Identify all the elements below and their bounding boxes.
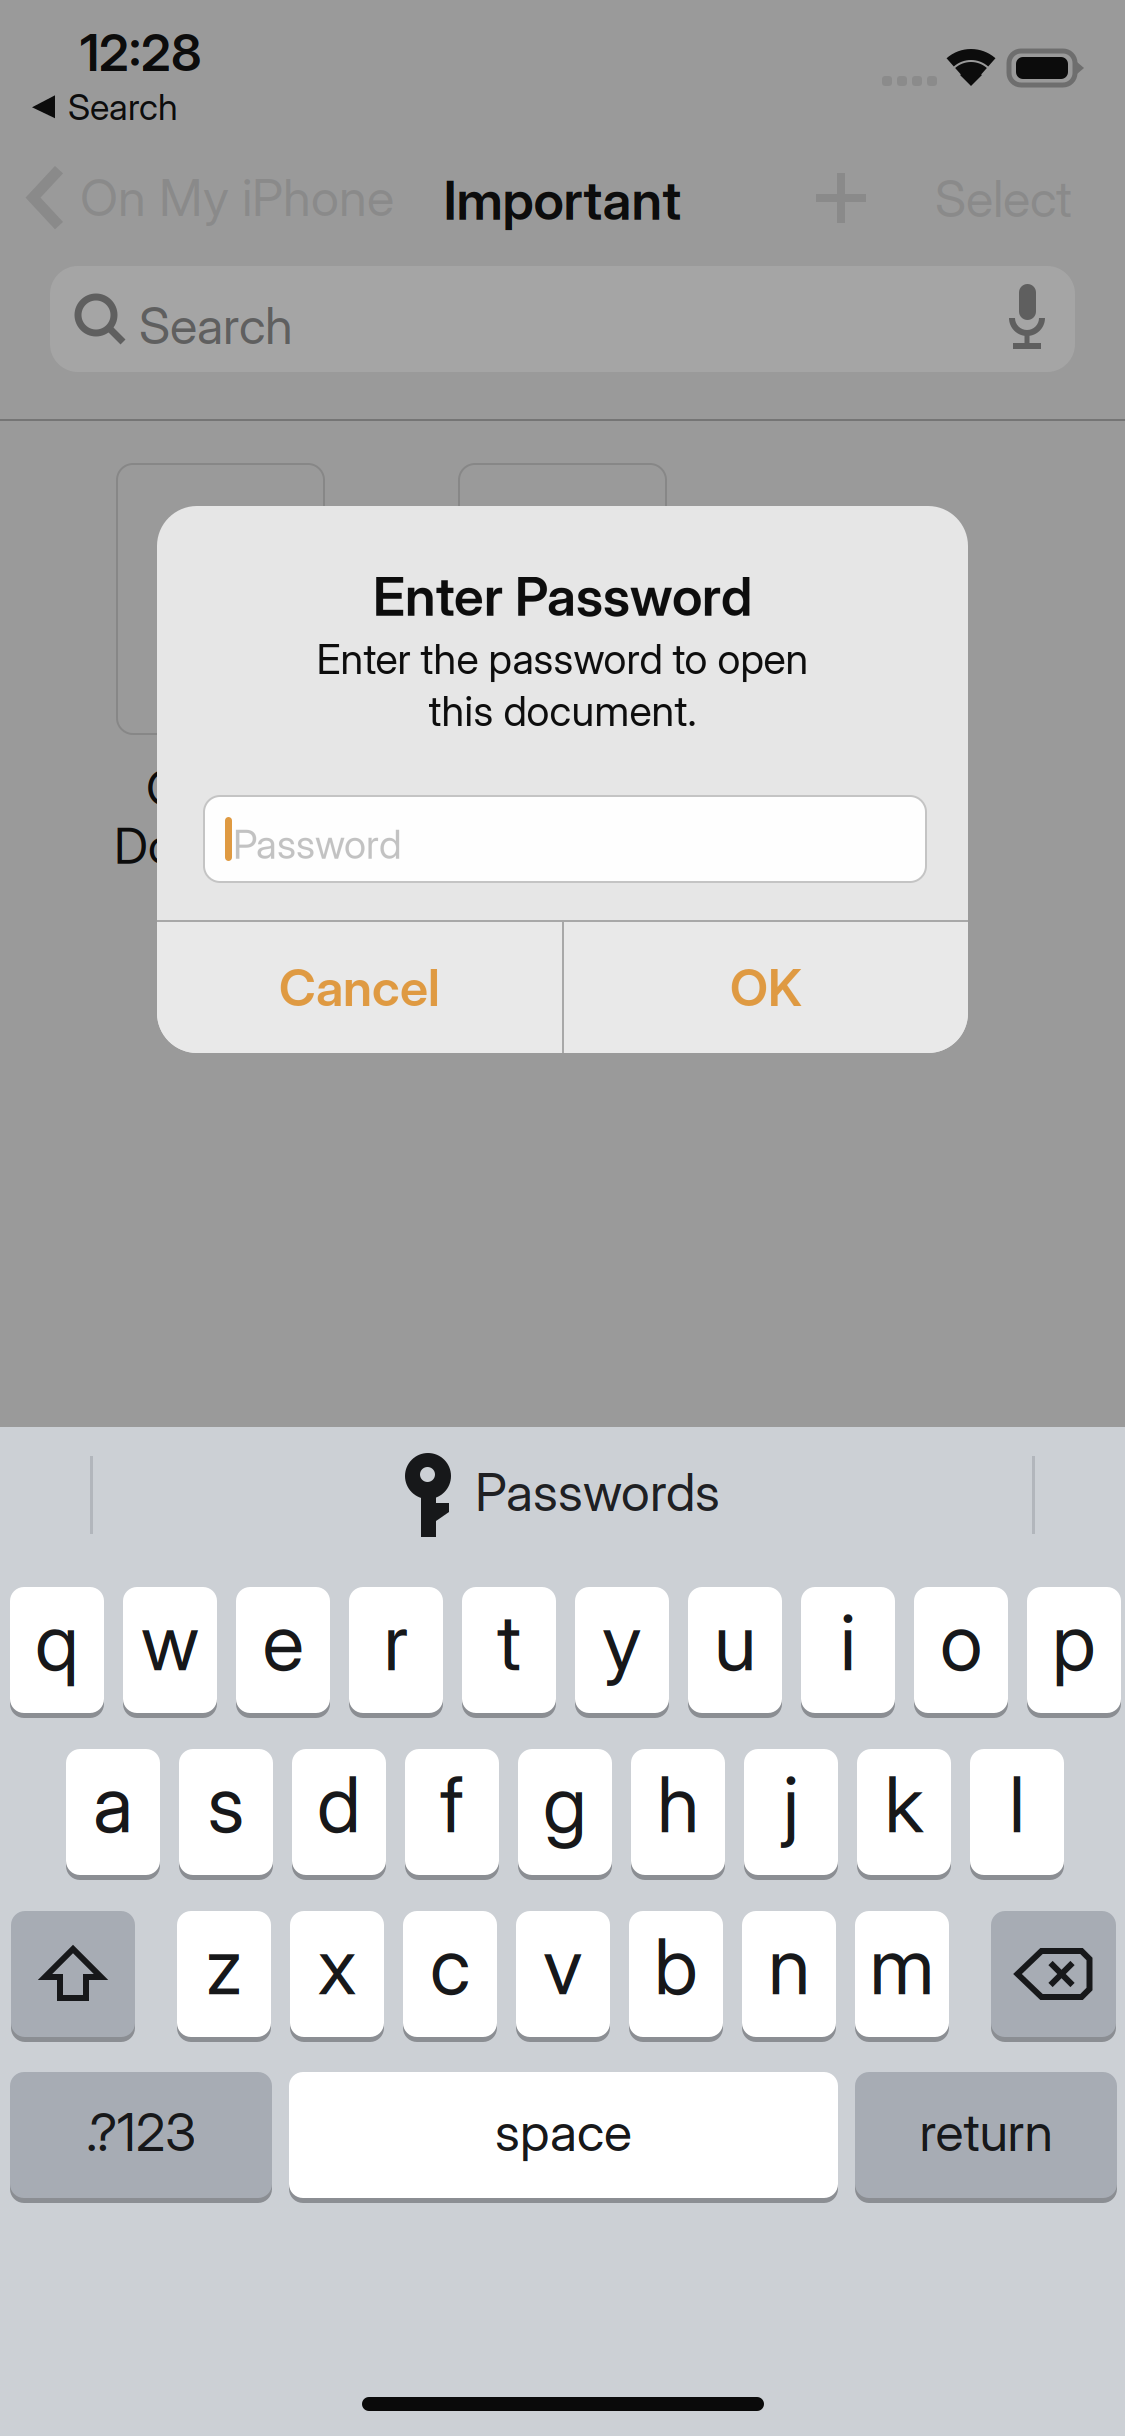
staticText: Search	[68, 85, 178, 129]
staticText: h	[657, 1757, 699, 1851]
staticText: OK	[730, 957, 802, 1018]
button[interactable]: q	[10, 1587, 104, 1718]
button[interactable]: x	[290, 1911, 384, 2042]
staticText: o	[940, 1595, 982, 1689]
button[interactable]: v	[516, 1911, 610, 2042]
button[interactable]: New Folder	[816, 173, 866, 223]
button[interactable]: Cancel	[157, 922, 562, 1053]
button[interactable]: l	[970, 1749, 1064, 1880]
button[interactable]: f	[405, 1749, 499, 1880]
staticText: g	[543, 1757, 587, 1851]
staticText: m	[869, 1919, 934, 2013]
button[interactable]: m	[855, 1911, 949, 2042]
staticText: x	[317, 1919, 356, 2013]
button[interactable]: p	[1027, 1587, 1121, 1718]
staticText: j	[783, 1757, 799, 1851]
staticText: l	[1009, 1757, 1025, 1851]
button[interactable]: t	[462, 1587, 556, 1718]
button[interactable]: c	[403, 1911, 497, 2042]
staticText: Search	[139, 295, 293, 356]
staticText: s	[207, 1757, 244, 1851]
staticText: b	[654, 1919, 698, 2013]
staticText: Enter the password to open	[316, 634, 808, 684]
staticText: On My iPhone	[80, 167, 394, 228]
staticText: Important	[443, 168, 681, 232]
button[interactable]: w	[123, 1587, 217, 1718]
staticText: q	[35, 1595, 79, 1689]
button[interactable]: i	[801, 1587, 895, 1718]
staticText: .?123	[86, 2100, 196, 2163]
staticText: w	[141, 1595, 199, 1689]
button[interactable]: On My iPhone	[28, 167, 394, 228]
button[interactable]: Delete	[991, 1911, 1116, 2042]
button[interactable]: s	[179, 1749, 273, 1880]
button[interactable]: e	[236, 1587, 330, 1718]
button[interactable]: Shift	[11, 1911, 135, 2042]
button[interactable]: .?123	[10, 2072, 272, 2203]
staticText: t	[497, 1595, 521, 1689]
staticText: space	[495, 2100, 632, 2163]
button[interactable]: OK	[564, 922, 968, 1053]
staticText: return	[919, 2100, 1052, 2163]
staticText: Confidential	[146, 758, 403, 818]
staticText: this document.	[428, 686, 696, 736]
staticText: Passwords	[475, 1460, 720, 1523]
button[interactable]: h	[631, 1749, 725, 1880]
staticText: 12:28	[80, 22, 202, 83]
staticText: v	[543, 1919, 583, 2013]
staticText: Enter Password	[373, 564, 752, 628]
button[interactable]: Search	[32, 85, 178, 129]
button[interactable]: Search	[50, 266, 1075, 372]
button[interactable]: Select	[935, 168, 1072, 229]
button[interactable]: k	[857, 1749, 951, 1880]
button[interactable]: n	[742, 1911, 836, 2042]
button[interactable]: a	[66, 1749, 160, 1880]
button[interactable]: g	[518, 1749, 612, 1880]
staticText: Document	[114, 816, 337, 876]
staticText: d	[317, 1757, 361, 1851]
staticText: Password	[233, 820, 402, 868]
button[interactable]: j	[744, 1749, 838, 1880]
button[interactable]: y	[575, 1587, 669, 1718]
staticText: i	[840, 1595, 856, 1689]
staticText: Select	[935, 168, 1072, 229]
staticText: n	[768, 1919, 810, 2013]
button[interactable]: o	[914, 1587, 1008, 1718]
button[interactable]: Passwords	[405, 1453, 720, 1537]
button[interactable]: return	[855, 2072, 1117, 2203]
staticText: y	[602, 1595, 642, 1689]
button[interactable]: b	[629, 1911, 723, 2042]
staticText: c	[430, 1919, 470, 2013]
button[interactable]: d	[292, 1749, 386, 1880]
staticText: k	[884, 1757, 923, 1851]
button[interactable]: u	[688, 1587, 782, 1718]
staticText: r	[383, 1595, 408, 1689]
button[interactable]: space	[289, 2072, 838, 2203]
staticText: e	[262, 1595, 303, 1689]
button[interactable]: z	[177, 1911, 271, 2042]
staticText: f	[440, 1757, 464, 1851]
staticText: z	[205, 1919, 242, 2013]
staticText: p	[1052, 1595, 1096, 1689]
staticText: a	[93, 1757, 133, 1851]
staticText: u	[714, 1595, 756, 1689]
button[interactable]: r	[349, 1587, 443, 1718]
staticText: Cancel	[279, 957, 440, 1018]
